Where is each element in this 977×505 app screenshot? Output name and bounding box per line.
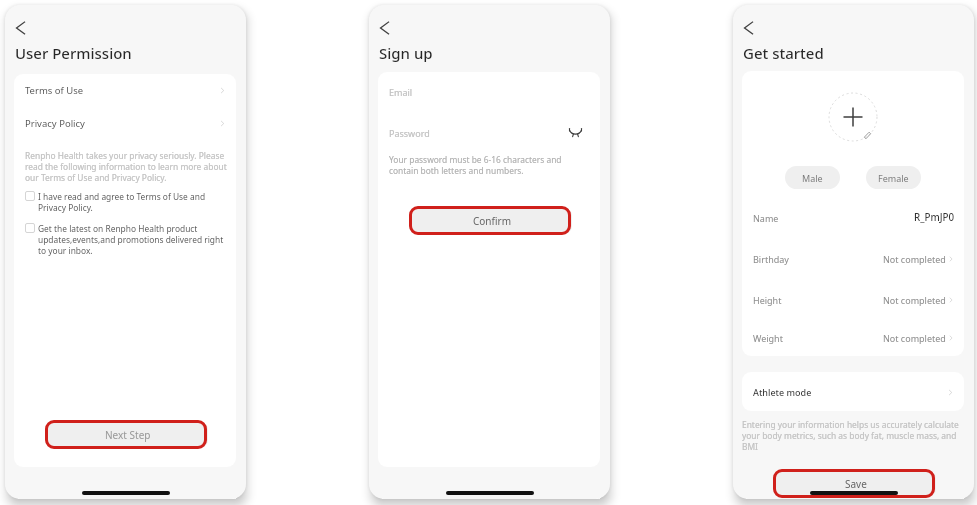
button[interactable]: Back xyxy=(13,17,35,39)
button[interactable]: Next Step xyxy=(48,422,208,448)
button[interactable]: Add profile photo xyxy=(827,91,879,143)
staticText: Male xyxy=(802,172,823,184)
staticText: User Permission xyxy=(15,43,132,63)
button[interactable]: Back xyxy=(377,17,399,39)
button[interactable]: Get the latest on Renpho Health product … xyxy=(14,223,236,256)
staticText: Your password must be 6-16 characters an… xyxy=(389,154,585,176)
staticText: Weight xyxy=(753,332,783,344)
button[interactable]: I have read and agree to Terms of Use an… xyxy=(14,191,236,213)
staticText: Password xyxy=(389,127,430,139)
staticText: Not completed xyxy=(883,294,946,306)
button[interactable]: Save xyxy=(776,471,936,497)
staticText: Name xyxy=(753,212,779,224)
staticText: Height xyxy=(753,294,782,306)
staticText: Save xyxy=(845,477,867,491)
staticText: I have read and agree to Terms of Use an… xyxy=(38,191,231,213)
button[interactable]: Birthday xyxy=(742,238,964,279)
button[interactable]: Male xyxy=(785,166,840,189)
button[interactable]: Name xyxy=(742,197,964,238)
staticText: Get started xyxy=(743,43,824,63)
button[interactable]: Confirm xyxy=(412,208,572,234)
staticText: Birthday xyxy=(753,253,789,265)
staticText: Athlete mode xyxy=(753,386,812,398)
staticText: Email xyxy=(389,86,413,98)
staticText: Confirm xyxy=(473,214,512,228)
staticText: Terms of Use xyxy=(25,84,84,97)
button[interactable]: Terms of Use xyxy=(14,74,236,106)
staticText: R_PmJP0 xyxy=(914,211,955,224)
button[interactable]: Show password xyxy=(568,125,583,140)
staticText: Next Step xyxy=(105,428,151,442)
staticText: Privacy Policy xyxy=(25,117,85,130)
button[interactable]: Athlete mode xyxy=(742,372,964,411)
staticText: Not completed xyxy=(883,253,946,265)
staticText: Get the latest on Renpho Health product … xyxy=(38,223,231,256)
staticText: Entering your information helps us accur… xyxy=(742,419,960,452)
staticText: Female xyxy=(878,172,909,184)
button[interactable]: Weight xyxy=(742,320,964,356)
staticText: Sign up xyxy=(379,43,433,63)
button[interactable]: Back xyxy=(741,17,763,39)
staticText: Renpho Health takes your privacy serious… xyxy=(25,150,227,183)
staticText: Not completed xyxy=(883,332,946,344)
button[interactable]: Female xyxy=(866,166,921,189)
button[interactable]: Height xyxy=(742,279,964,320)
button[interactable]: Privacy Policy xyxy=(14,106,236,141)
